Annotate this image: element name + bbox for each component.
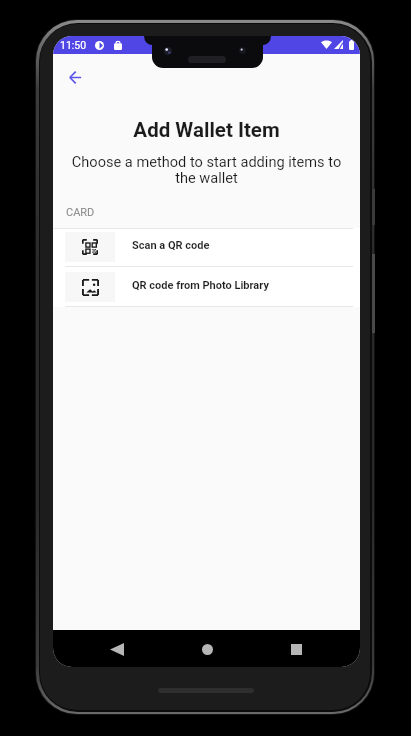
button[interactable]: QR code from Photo Library	[53, 266, 360, 307]
button[interactable]: Scan a QR code	[53, 228, 360, 266]
button[interactable]: Recent apps	[279, 632, 313, 666]
staticText: Choose a method to start adding items to…	[69, 153, 344, 186]
staticText: CARD	[66, 206, 95, 219]
button[interactable]: Home	[190, 632, 224, 666]
button[interactable]: Back	[58, 60, 93, 95]
staticText: 11:50	[60, 39, 87, 51]
staticText: Add Wallet Item	[53, 118, 360, 142]
staticText: QR code from Photo Library	[132, 279, 269, 292]
staticText: Scan a QR code	[132, 239, 210, 252]
button[interactable]: Back	[100, 632, 134, 666]
